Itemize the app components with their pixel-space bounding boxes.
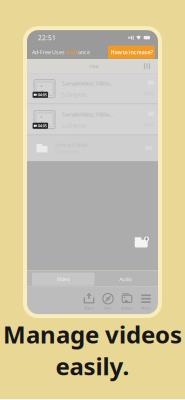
staticText: 5.26 bytes [62, 122, 87, 129]
button[interactable]: New folder [132, 235, 152, 251]
staticText: Video [57, 276, 70, 283]
staticText: Share [84, 305, 94, 310]
staticText: 5.26 bytes [62, 91, 87, 98]
button[interactable]: Synced folder [27, 135, 158, 161]
staticText: SampleVideo_1080x... [62, 111, 113, 118]
staticText: easily. [55, 350, 129, 382]
button[interactable]: Video [32, 273, 94, 286]
staticText: Album [121, 305, 133, 310]
button[interactable]: Audio [94, 273, 157, 286]
staticText: How to increase? [110, 49, 152, 56]
button[interactable]: 04:05 [27, 104, 158, 135]
button[interactable]: How to increase? [108, 46, 155, 59]
staticText: Ad-Free Uses [32, 49, 66, 56]
button[interactable]: Share [79, 289, 98, 311]
staticText: 22:51 [38, 33, 56, 42]
button[interactable]: 04:05 [27, 73, 158, 104]
staticText: 04:05 [38, 123, 47, 128]
button[interactable]: Menu [136, 289, 155, 311]
staticText: Menu [141, 305, 151, 310]
staticText: once [77, 49, 90, 56]
staticText: Disc [104, 305, 112, 310]
staticText: Synced folder [55, 141, 88, 148]
button[interactable]: Disc [98, 289, 117, 311]
button[interactable]: Album [117, 289, 136, 311]
button[interactable]: Sort [141, 60, 153, 73]
staticText: 04:05 [38, 92, 47, 97]
staticText: Audio [119, 276, 132, 283]
staticText: Manage videos [3, 318, 182, 350]
staticText: 1/20 [66, 49, 77, 56]
staticText: root [89, 63, 99, 70]
staticText: SampleVideo_1080x... [62, 80, 113, 87]
